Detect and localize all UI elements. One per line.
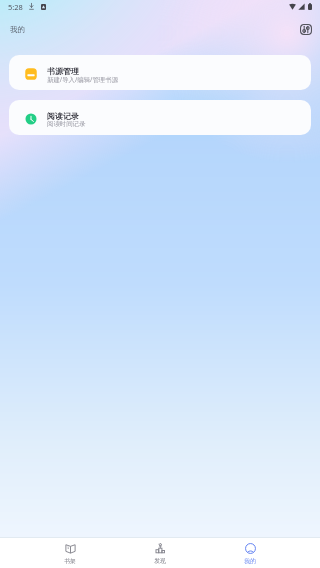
staticText: 我的 [10,25,25,34]
button[interactable]: 阅读记录 [9,100,311,135]
staticText: 阅读时间记录 [47,120,86,128]
staticText: 书架 [64,557,76,564]
button[interactable]: 书源管理 [9,55,311,90]
staticText: 我的 [244,557,256,564]
button[interactable]: 发现 [115,538,205,568]
staticText: 书源管理 [47,66,79,76]
button[interactable]: 设置 [297,21,314,38]
staticText: 阅读记录 [47,111,79,121]
staticText: 发现 [154,557,166,564]
staticText: 5:28 [8,2,23,12]
button[interactable]: 书架 [25,538,115,568]
button[interactable]: 我的 [205,538,295,568]
staticText: 新建/导入/编辑/管理书源 [47,75,119,84]
